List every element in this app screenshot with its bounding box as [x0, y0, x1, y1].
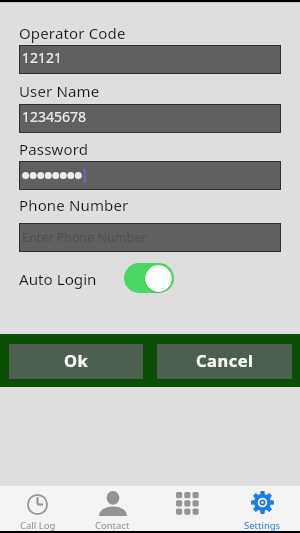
button[interactable]: Enter Phone Number — [20, 224, 280, 251]
staticText: 12121 — [22, 48, 63, 67]
button[interactable]: 12121 — [20, 46, 280, 73]
staticText: Auto Login — [19, 269, 97, 290]
button[interactable]: Keypad — [150, 486, 225, 531]
button[interactable]: 12345678 — [20, 105, 280, 132]
staticText: User Name — [19, 81, 100, 101]
staticText: Ok — [64, 349, 89, 371]
staticText: Operator Code — [19, 23, 126, 43]
staticText: Enter Phone Number — [22, 229, 147, 246]
button[interactable]: Call Log — [0, 486, 75, 531]
button[interactable]: Cancel — [157, 344, 292, 379]
staticText: 12345678 — [22, 107, 87, 126]
staticText: Settings — [244, 519, 281, 532]
staticText: Phone Number — [19, 195, 129, 215]
button[interactable]: Settings — [225, 486, 300, 531]
staticText: Password — [19, 139, 89, 159]
button[interactable]: Auto Login — [124, 263, 174, 293]
button[interactable] — [20, 162, 280, 189]
button[interactable]: Contact — [75, 486, 150, 531]
staticText: Call Log — [20, 519, 56, 532]
button[interactable]: Ok — [9, 344, 143, 379]
staticText: Contact — [95, 519, 130, 532]
staticText: Cancel — [196, 349, 254, 371]
